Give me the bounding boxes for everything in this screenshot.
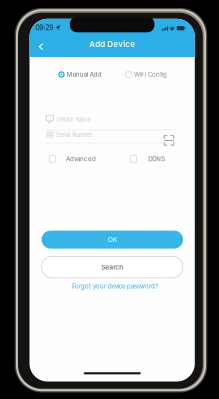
staticText: Advanced (66, 155, 96, 163)
button[interactable]: Advanced (48, 154, 97, 164)
staticText: Add Device (89, 39, 135, 49)
staticText: OK (108, 236, 117, 244)
button[interactable]: WiFi Config (124, 69, 168, 80)
button[interactable]: Forgot your device password? (70, 281, 160, 292)
button[interactable]: Manual Add (57, 69, 103, 80)
staticText: DDNS (148, 155, 165, 163)
button[interactable]: DDNS (129, 154, 167, 164)
button[interactable]: Search (41, 256, 183, 278)
staticText: Serial Number (56, 132, 92, 138)
staticText: Device Name (56, 116, 90, 123)
button[interactable]: OK (41, 231, 183, 249)
staticText: 09:29 (35, 24, 53, 32)
staticText: Search (101, 263, 123, 271)
staticText: Manual Add (67, 71, 102, 78)
staticText: WiFi Config (134, 71, 167, 78)
button[interactable]: Back (32, 37, 50, 57)
staticText: Forgot your device password? (72, 283, 158, 290)
button[interactable]: Scan serial number (162, 133, 176, 147)
